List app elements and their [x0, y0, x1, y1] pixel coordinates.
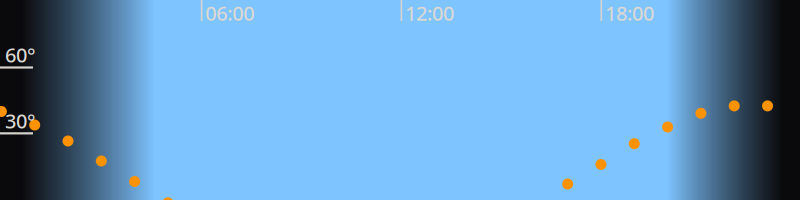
- staticText: 06:00: [205, 0, 254, 26]
- staticText: 12:00: [405, 0, 454, 26]
- staticText: 18:00: [605, 0, 654, 26]
- staticText: 60°: [5, 41, 36, 68]
- staticText: 30°: [5, 107, 36, 134]
